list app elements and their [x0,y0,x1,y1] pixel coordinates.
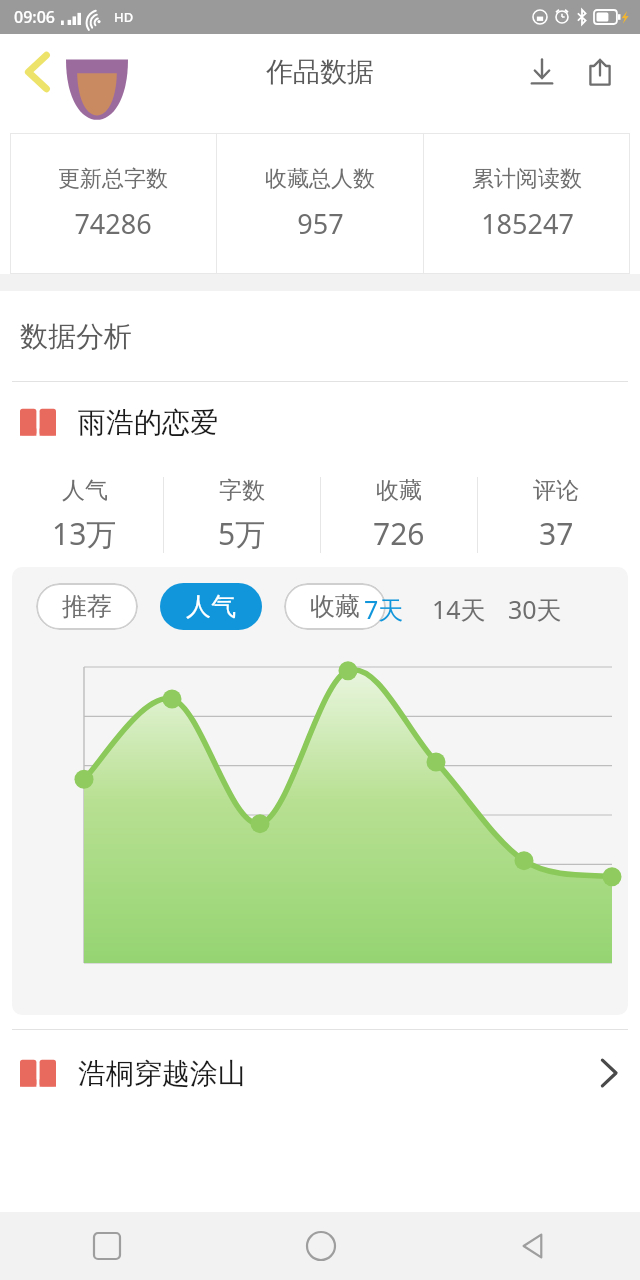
staticText: 74286 [74,205,152,242]
button[interactable]: 评论 [478,462,634,567]
staticText: 185247 [481,205,574,242]
staticText: 37 [539,513,574,554]
staticText: 人气 [186,591,236,622]
staticText: 雨浩的恋爱 [78,405,218,440]
button[interactable]: 收藏 [284,583,386,630]
staticText: 字数 [219,476,265,505]
button[interactable]: 收藏 [321,462,477,567]
button[interactable]: Download [516,46,568,98]
button[interactable]: 人气 [6,462,163,567]
button[interactable]: 累计阅读数 [424,133,630,274]
staticText: 收藏 [310,591,360,622]
button[interactable]: 字数 [164,462,320,567]
staticText: 13万 [52,513,117,554]
button[interactable]: 7天 [364,592,404,626]
button[interactable]: Recents [0,1212,214,1280]
staticText: 957 [297,205,344,242]
staticText: HD [114,8,134,26]
button[interactable]: Back [6,40,70,104]
button[interactable]: Back [427,1212,640,1280]
button[interactable]: Share [574,46,626,98]
staticText: 作品数据 [266,55,374,89]
staticText: 更新总字数 [58,165,168,193]
button[interactable]: 14天 [432,592,486,626]
staticText: 收藏 [376,476,422,505]
staticText: 人气 [62,476,108,505]
staticText: 浩桐穿越涂山 [78,1056,246,1091]
staticText: 推荐 [62,591,112,622]
button[interactable]: 更新总字数 [10,133,216,274]
staticText: 数据分析 [20,319,132,354]
button[interactable]: 人气 [160,583,262,630]
button[interactable]: 雨浩的恋爱 [0,382,640,462]
staticText: 09:06 [14,6,55,28]
button[interactable]: 推荐 [36,583,138,630]
staticText: 评论 [533,476,579,505]
button[interactable]: 收藏总人数 [217,133,423,274]
staticText: 726 [373,513,425,554]
staticText: 收藏总人数 [265,165,375,193]
button[interactable]: Home [214,1212,427,1280]
button[interactable]: 浩桐穿越涂山 [0,1030,640,1116]
staticText: 累计阅读数 [472,165,582,193]
staticText: 5万 [218,513,266,554]
button[interactable]: 30天 [508,592,562,626]
